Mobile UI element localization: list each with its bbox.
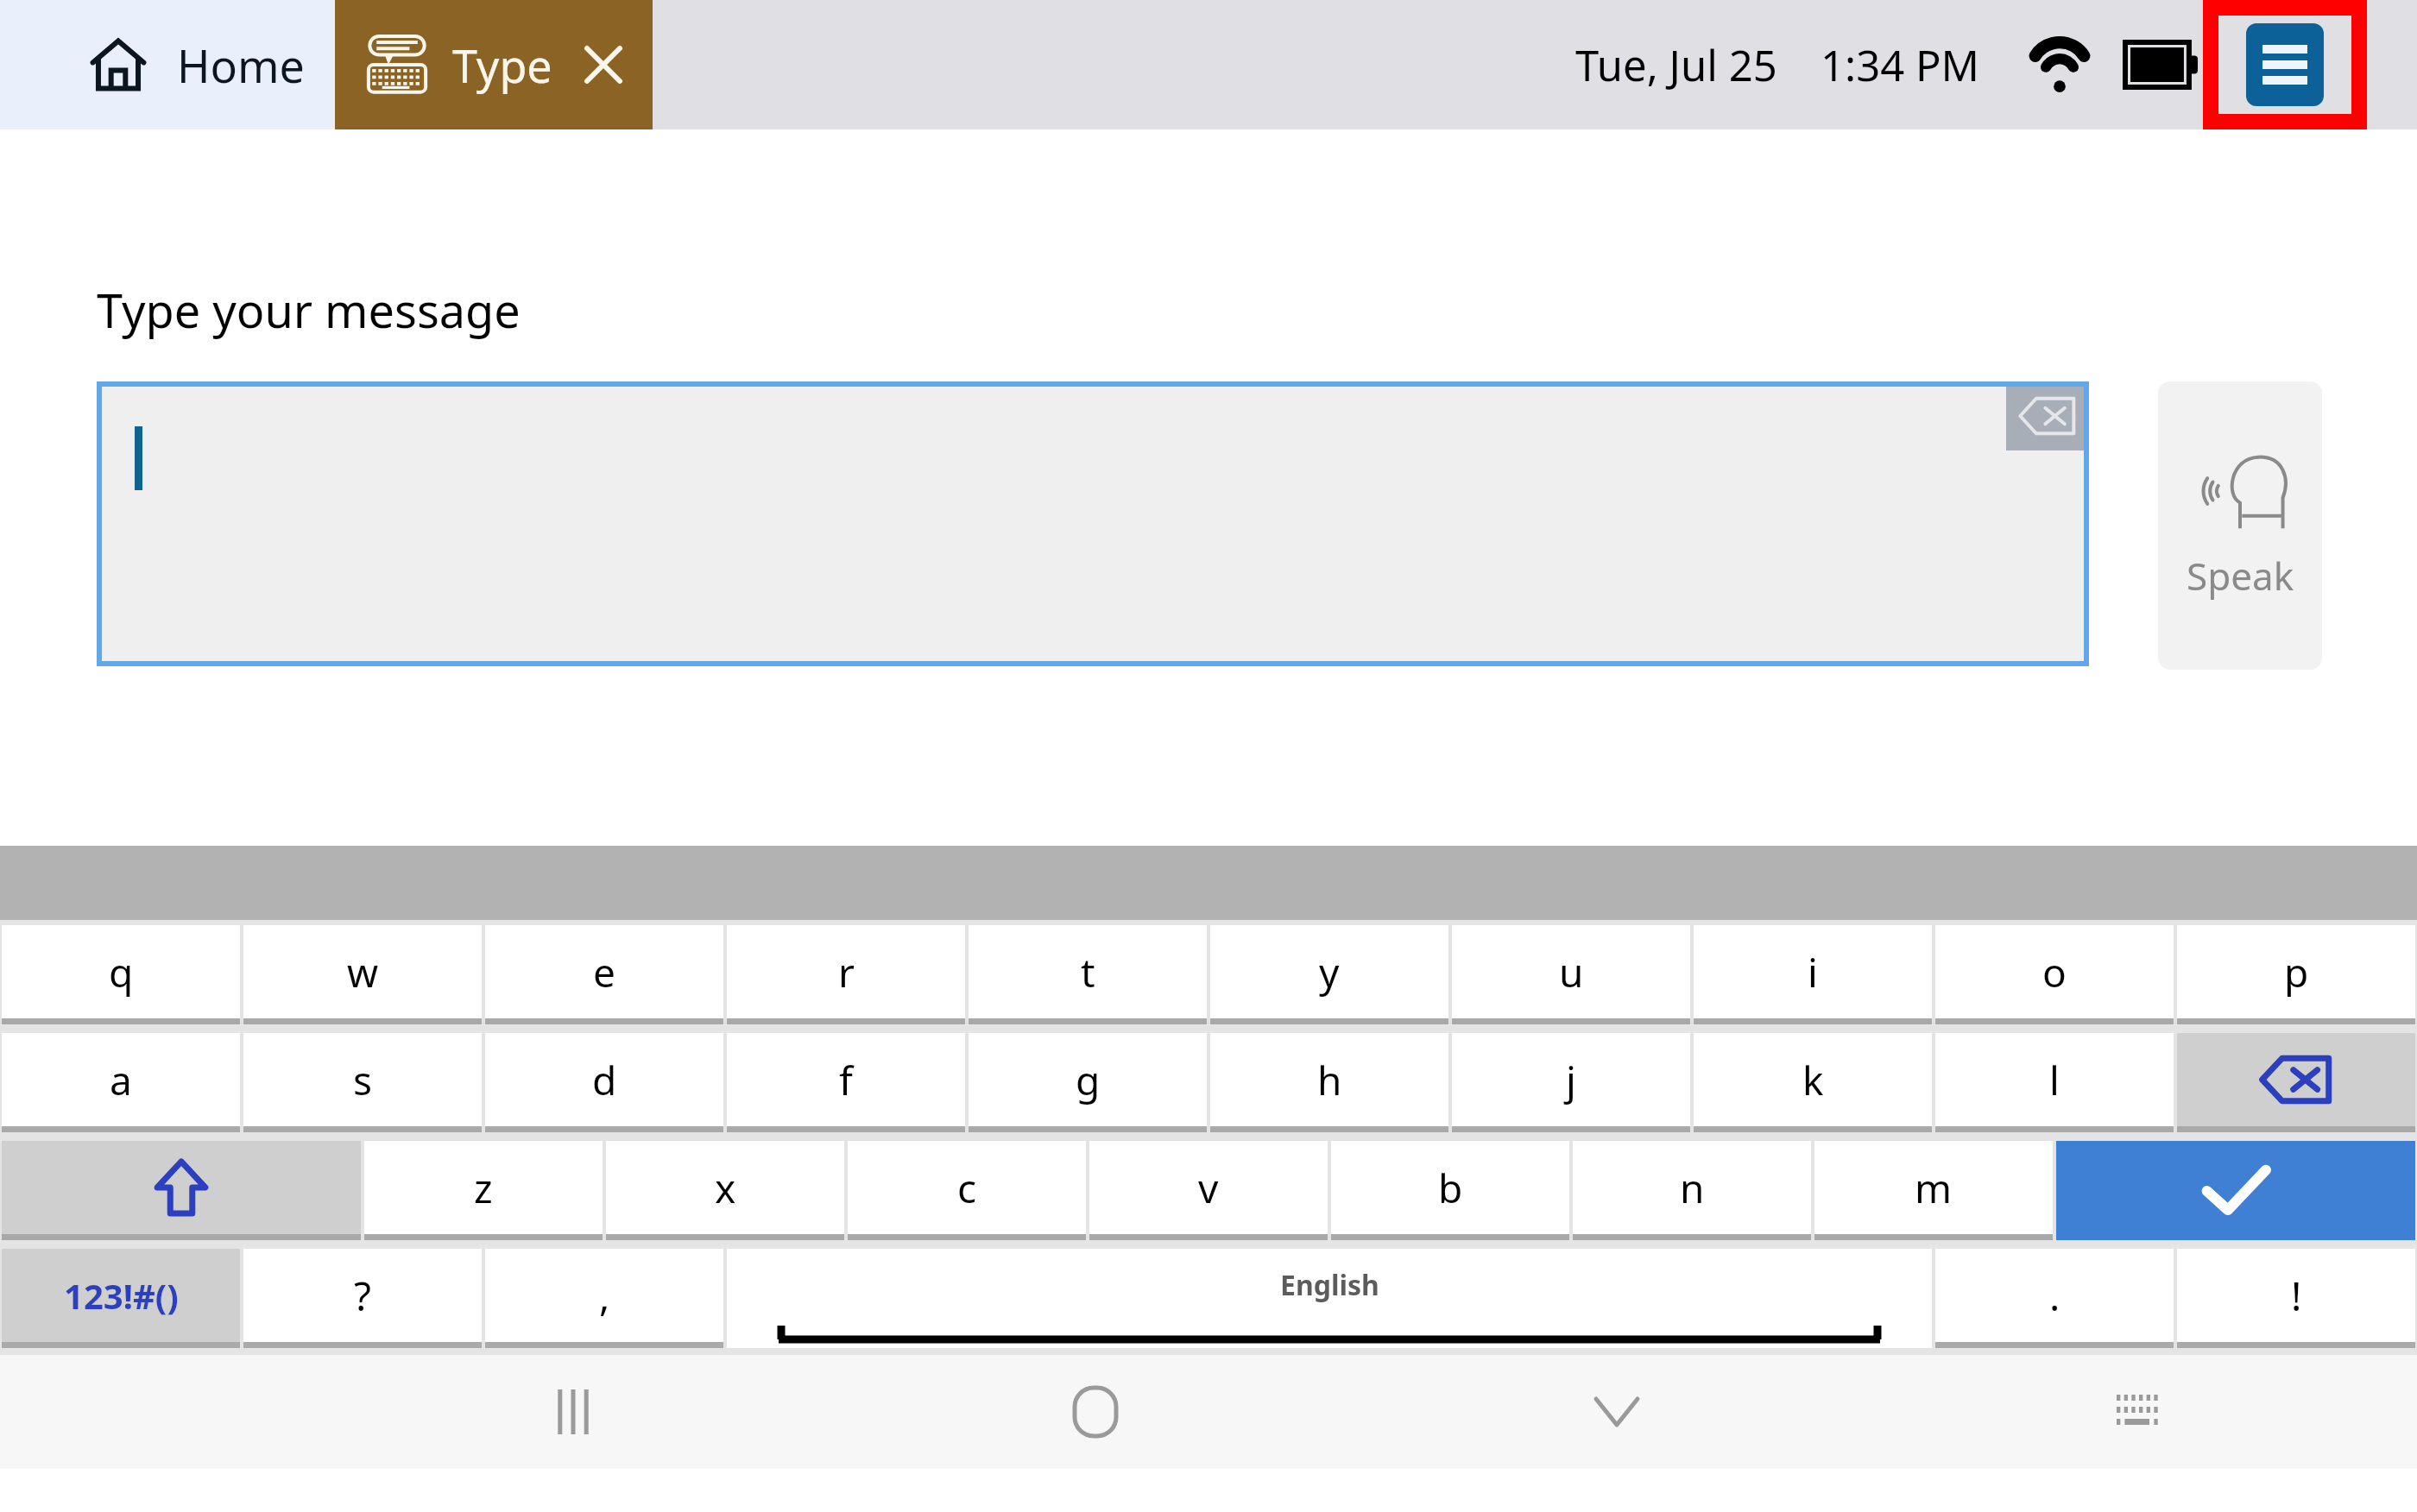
button[interactable]: m: [1814, 1141, 2053, 1240]
staticText: Type: [452, 35, 552, 96]
button[interactable]: f: [727, 1033, 965, 1132]
button[interactable]: i: [1694, 925, 1932, 1024]
button[interactable]: 123!#(): [2, 1249, 240, 1348]
staticText: a: [110, 1053, 132, 1107]
button[interactable]: p: [2177, 925, 2415, 1024]
staticText: m: [1915, 1161, 1953, 1215]
button[interactable]: e: [485, 925, 723, 1024]
staticText: f: [839, 1053, 853, 1107]
button[interactable]: g: [969, 1033, 1207, 1132]
staticText: p: [2284, 945, 2309, 999]
button[interactable]: Hide keyboard: [1539, 1355, 1694, 1469]
staticText: Type your message: [97, 278, 521, 342]
button[interactable]: z: [364, 1141, 603, 1240]
staticText: o: [2042, 945, 2067, 999]
button[interactable]: Home: [0, 0, 335, 129]
button[interactable]: Recents: [495, 1355, 651, 1469]
button[interactable]: b: [1331, 1141, 1569, 1240]
staticText: w: [347, 945, 379, 999]
button[interactable]: Menu: [2246, 23, 2324, 106]
staticText: j: [1566, 1053, 1576, 1107]
button[interactable]: Clear text: [97, 381, 2089, 666]
button[interactable]: j: [1452, 1033, 1690, 1132]
staticText: n: [1680, 1161, 1705, 1215]
button[interactable]: !: [2177, 1249, 2415, 1348]
staticText: r: [838, 945, 855, 999]
staticText: x: [715, 1161, 736, 1215]
button[interactable]: Shift: [2, 1141, 361, 1240]
staticText: y: [1319, 945, 1340, 999]
button[interactable]: q: [2, 925, 240, 1024]
staticText: l: [2049, 1053, 2060, 1107]
staticText: ,: [599, 1269, 610, 1323]
staticText: Tue, Jul 25: [1575, 36, 1777, 94]
button[interactable]: Space: [727, 1249, 1932, 1348]
button[interactable]: l: [1935, 1033, 2174, 1132]
button[interactable]: h: [1210, 1033, 1448, 1132]
staticText: Home: [177, 35, 305, 96]
button[interactable]: w: [243, 925, 482, 1024]
button[interactable]: Switch keyboard: [2060, 1355, 2216, 1469]
staticText: k: [1802, 1053, 1824, 1107]
button[interactable]: Home: [1018, 1355, 1173, 1469]
staticText: u: [1559, 945, 1584, 999]
button[interactable]: ,: [485, 1249, 723, 1348]
staticText: b: [1438, 1161, 1463, 1215]
button[interactable]: n: [1573, 1141, 1811, 1240]
staticText: h: [1317, 1053, 1342, 1107]
staticText: v: [1198, 1161, 1219, 1215]
staticText: Speak: [2187, 550, 2294, 602]
button[interactable]: t: [969, 925, 1207, 1024]
staticText: English: [1280, 1266, 1379, 1304]
button[interactable]: y: [1210, 925, 1448, 1024]
staticText: z: [474, 1161, 493, 1215]
button[interactable]: c: [848, 1141, 1086, 1240]
button[interactable]: Clear text: [2006, 381, 2089, 450]
button[interactable]: k: [1694, 1033, 1932, 1132]
staticText: e: [593, 945, 615, 999]
staticText: s: [353, 1053, 373, 1107]
staticText: g: [1076, 1053, 1101, 1107]
staticText: q: [109, 945, 134, 999]
button[interactable]: Enter: [2056, 1141, 2415, 1240]
button[interactable]: .: [1935, 1249, 2174, 1348]
button[interactable]: Type: [335, 0, 653, 129]
staticText: !: [2291, 1269, 2302, 1323]
staticText: t: [1081, 945, 1095, 999]
staticText: 1:34 PM: [1821, 36, 1980, 94]
button[interactable]: a: [2, 1033, 240, 1132]
button[interactable]: Speak: [2158, 381, 2322, 670]
button[interactable]: o: [1935, 925, 2174, 1024]
button[interactable]: Backspace: [2177, 1033, 2415, 1132]
button[interactable]: r: [727, 925, 965, 1024]
staticText: c: [957, 1161, 977, 1215]
button[interactable]: s: [243, 1033, 482, 1132]
button[interactable]: x: [606, 1141, 844, 1240]
button[interactable]: ?: [243, 1249, 482, 1348]
staticText: 123!#(): [64, 1272, 179, 1319]
staticText: ?: [354, 1269, 371, 1323]
button[interactable]: v: [1089, 1141, 1328, 1240]
button[interactable]: Close tab: [578, 40, 628, 90]
staticText: .: [2049, 1269, 2060, 1323]
button[interactable]: u: [1452, 925, 1690, 1024]
staticText: d: [592, 1053, 617, 1107]
button[interactable]: d: [485, 1033, 723, 1132]
staticText: i: [1808, 945, 1818, 999]
